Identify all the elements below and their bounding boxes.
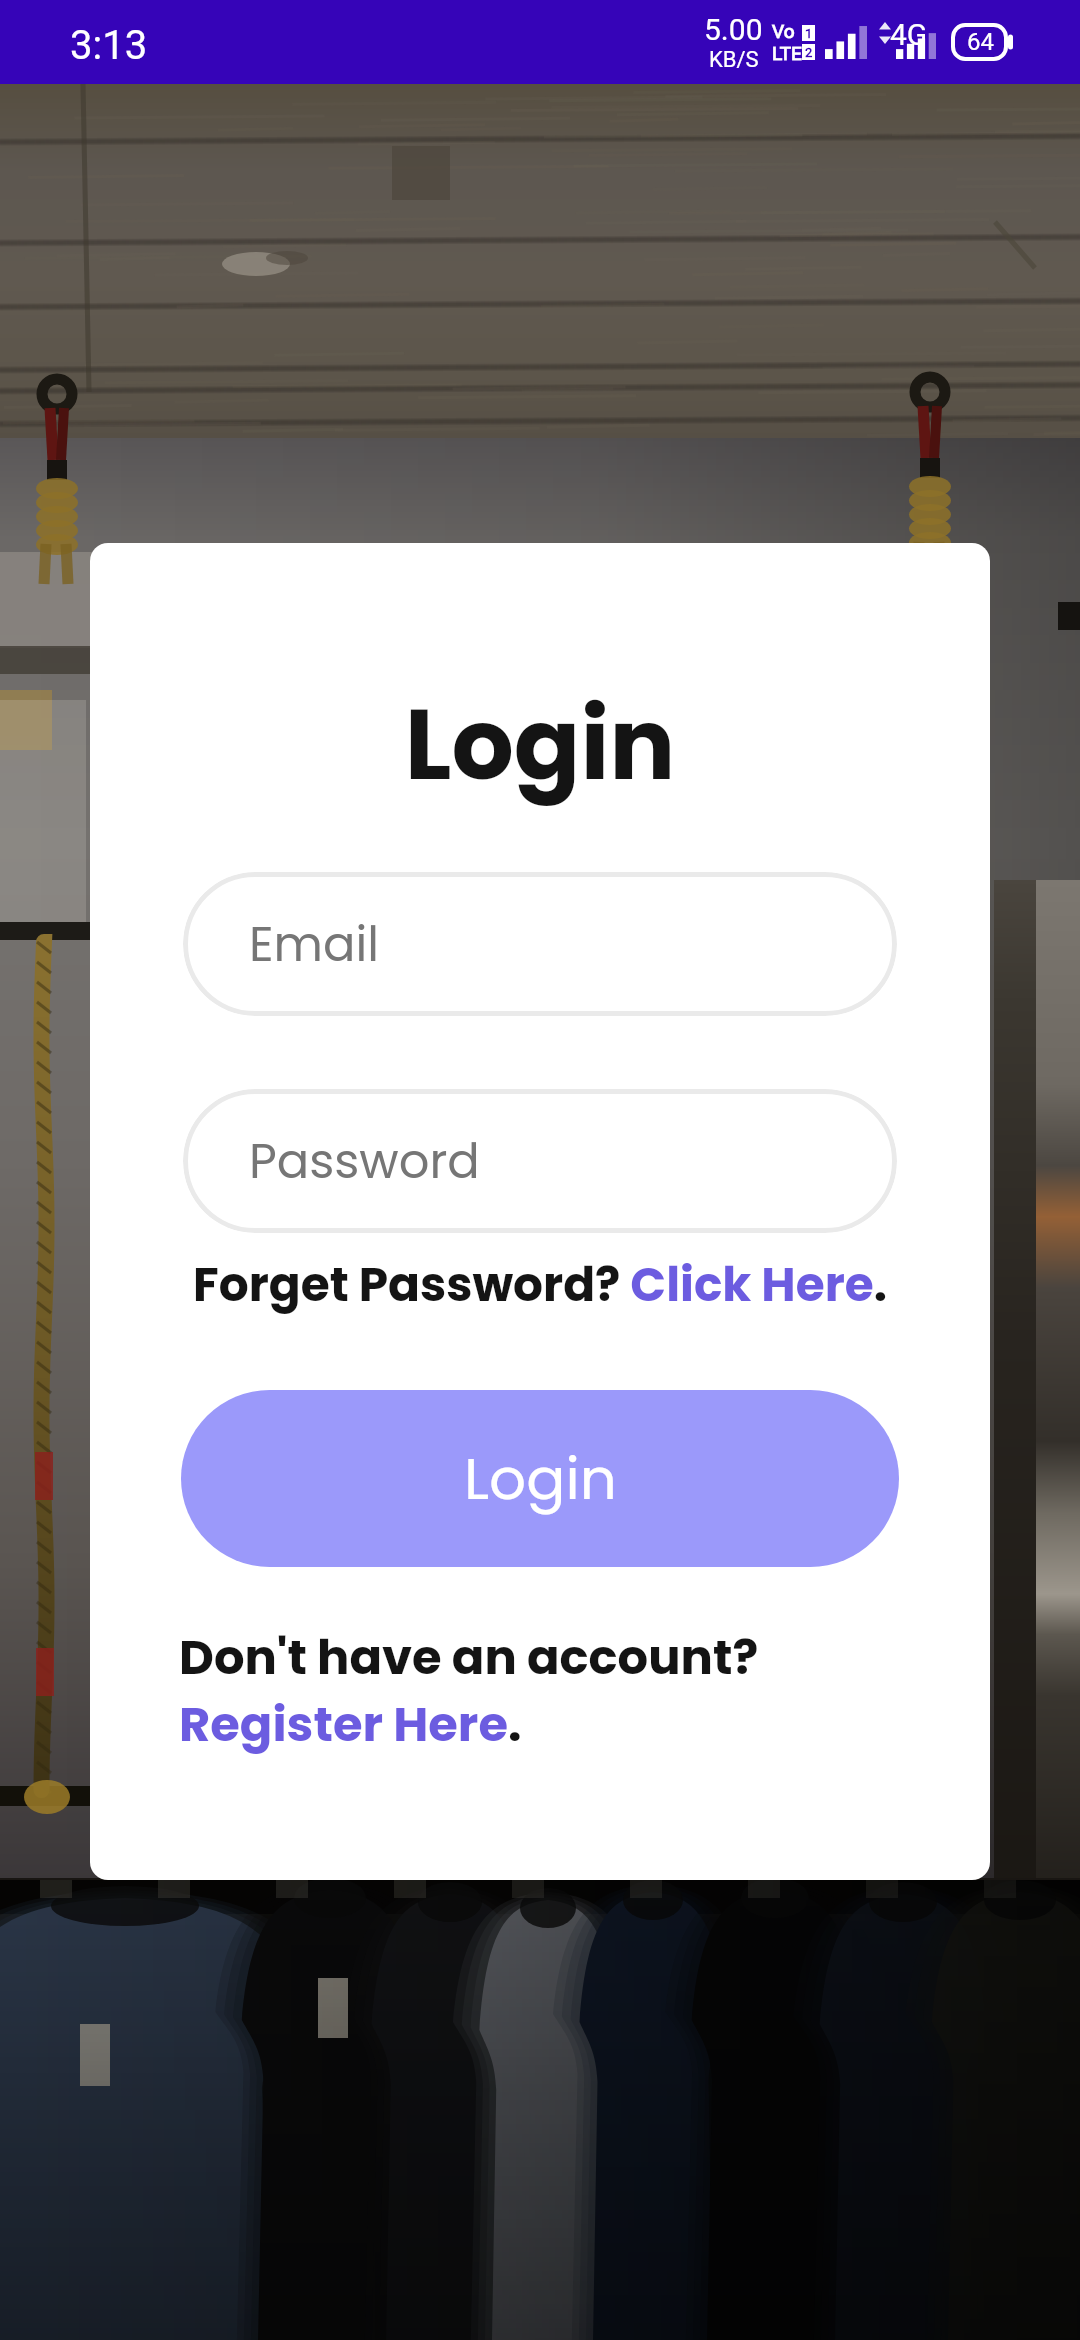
other: SIM 2 4G signal strength	[879, 19, 937, 59]
staticText: Register Here.	[179, 1691, 522, 1758]
staticText: Vo	[772, 20, 795, 42]
staticText: LTE	[772, 42, 802, 64]
button[interactable]: Register Here.	[179, 1691, 522, 1758]
button[interactable]: Password	[183, 1089, 897, 1233]
staticText: 64	[967, 28, 994, 56]
button[interactable]: Login	[181, 1390, 899, 1567]
staticText: Email	[249, 911, 380, 978]
staticText: Login	[464, 1438, 617, 1519]
staticText: 3:13	[70, 22, 148, 69]
staticText: Don't have an account?	[179, 1624, 759, 1691]
staticText: 4G	[890, 17, 928, 52]
other: Battery 64 percent	[953, 25, 1013, 59]
staticText: 5.00	[704, 12, 763, 47]
other: SIM 1 signal strength	[825, 26, 867, 59]
staticText: Password	[249, 1128, 480, 1195]
staticText: 1	[805, 26, 813, 41]
staticText: Login	[90, 676, 990, 813]
staticText: KB/S	[709, 47, 759, 73]
button[interactable]: Forget Password? Click Here.	[90, 1252, 990, 1318]
staticText: Forget Password? Click Here.	[90, 1252, 990, 1318]
staticText: 2	[805, 45, 813, 60]
button[interactable]: Email	[183, 872, 897, 1016]
